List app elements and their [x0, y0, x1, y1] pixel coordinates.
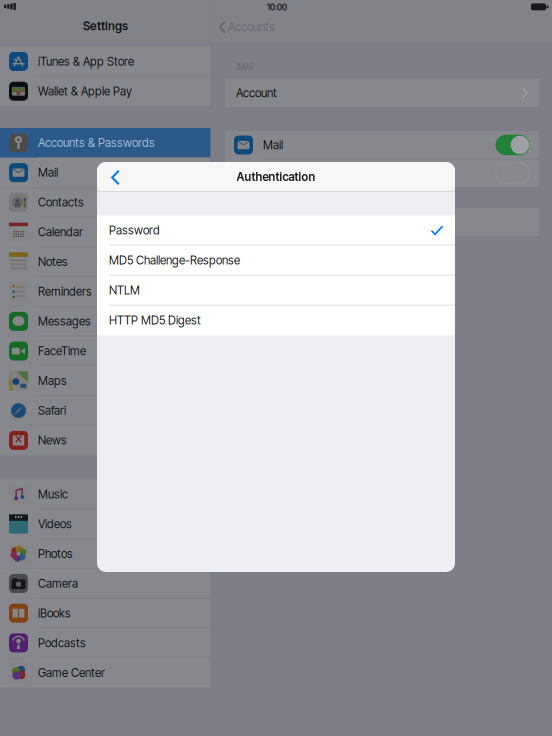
button[interactable]: Accounts & Passwords [0, 128, 211, 158]
button[interactable]: Contacts [0, 187, 211, 217]
button[interactable]: iBooks [0, 598, 211, 628]
staticText: Podcasts [38, 636, 86, 650]
staticText: Notes [38, 255, 68, 269]
staticText: HTTP MD5 Digest [109, 313, 201, 327]
button[interactable]: Photos [0, 539, 211, 569]
staticText: Videos [38, 517, 72, 531]
button[interactable]: iTunes & App Store [0, 47, 211, 76]
staticText: NTLM [109, 283, 140, 297]
staticText: Wallet & Apple Pay [38, 84, 132, 98]
staticText: 10:00 [267, 3, 287, 13]
button[interactable]: Accounts [219, 19, 315, 35]
staticText: Reminders [38, 285, 92, 299]
button[interactable]: Reminders [0, 277, 211, 307]
button[interactable]: Notes [0, 247, 211, 277]
button[interactable]: Calendar [0, 217, 211, 247]
staticText: iBooks [38, 606, 71, 620]
staticText: Music [38, 487, 68, 501]
button[interactable]: HTTP MD5 Digest [97, 305, 455, 335]
staticText: Accounts & Passwords [38, 136, 155, 150]
staticText: MD5 Challenge-Response [109, 253, 240, 267]
staticText: Camera [38, 576, 78, 590]
button[interactable]: Camera [0, 568, 211, 598]
staticText: Mail [38, 166, 58, 180]
staticText: Accounts [228, 20, 275, 34]
staticText: Password [109, 223, 160, 237]
button[interactable]: MD5 Challenge-Response [97, 245, 455, 275]
button[interactable]: Mail on [495, 135, 529, 155]
button[interactable]: Safari [0, 396, 211, 426]
button[interactable]: Maps [0, 366, 211, 396]
staticText: Safari [38, 404, 66, 418]
button[interactable]: Account [225, 79, 539, 107]
button[interactable]: Game Center [0, 658, 211, 688]
staticText: Settings [83, 19, 128, 33]
staticText: Account [236, 86, 277, 100]
staticText: Messages [38, 314, 91, 328]
button[interactable]: Wallet & Apple Pay [0, 76, 211, 106]
staticText: Authentication [236, 170, 315, 184]
staticText: IMAP [236, 62, 255, 72]
button[interactable]: Back [106, 170, 124, 184]
button[interactable]: FaceTime [0, 336, 211, 366]
staticText: Photos [38, 547, 73, 561]
staticText: FaceTime [38, 344, 86, 358]
staticText: Contacts [38, 195, 84, 209]
staticText: Calendar [38, 225, 83, 239]
staticText: News [38, 433, 67, 447]
staticText: Mail [263, 138, 283, 152]
button[interactable]: Videos [0, 509, 211, 539]
button[interactable]: NTLM [97, 275, 455, 305]
staticText: Maps [38, 374, 67, 388]
button[interactable]: Mail [0, 158, 211, 188]
button[interactable]: Password [97, 215, 455, 245]
button[interactable]: Messages [0, 306, 211, 336]
button[interactable]: News [0, 425, 211, 455]
staticText: iTunes & App Store [38, 54, 134, 68]
button[interactable]: Music [0, 479, 211, 509]
staticText: Game Center [38, 666, 105, 680]
button[interactable]: Podcasts [0, 628, 211, 658]
